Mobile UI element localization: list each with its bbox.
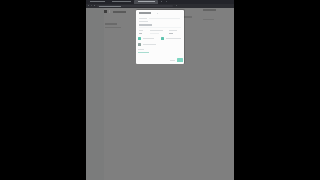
button[interactable]: Save — [177, 58, 183, 62]
button[interactable]: Active tab — [134, 0, 158, 4]
button[interactable] — [138, 52, 184, 53]
button[interactable]: Tab — [110, 0, 133, 4]
button[interactable]: Address bar — [97, 5, 173, 7]
button[interactable] — [161, 37, 184, 40]
button[interactable] — [138, 43, 181, 46]
button[interactable] — [138, 37, 161, 40]
button[interactable]: Tab — [87, 0, 108, 4]
button[interactable] — [169, 59, 176, 62]
